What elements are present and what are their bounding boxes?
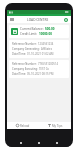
staticText: 7765551200514 xyxy=(38,62,58,66)
staticText: 10000.00 xyxy=(39,32,52,36)
staticText: 05-10-2021 08:15 PM xyxy=(27,72,54,76)
staticText: LOAD CENTRE xyxy=(27,18,49,22)
staticText: Company Executing: xyxy=(12,67,38,71)
button[interactable]: My Tips xyxy=(39,122,71,129)
staticText: Current Balance: xyxy=(20,27,44,31)
staticText: TEST Co xyxy=(39,67,49,71)
button[interactable]: Reference Number: xyxy=(9,60,69,78)
staticText: Company Generating: xyxy=(12,47,40,51)
staticText: 1234561234 xyxy=(38,42,54,46)
button[interactable]: Menu xyxy=(7,16,16,23)
button[interactable]: Reference Number: xyxy=(9,40,69,58)
staticText: Affiliates xyxy=(41,47,52,51)
staticText: 01-10-2021 01:02 AM xyxy=(27,52,54,56)
staticText: Date/Time: xyxy=(12,52,26,56)
staticText: Credit Limit: xyxy=(20,32,38,36)
staticText: 500.00 xyxy=(45,27,55,31)
button[interactable]: Reload xyxy=(7,122,39,129)
staticText: My Tips xyxy=(52,124,63,128)
staticText: Reference Number: xyxy=(12,42,37,46)
button[interactable]: Refresh xyxy=(60,16,71,23)
staticText: Reference Number: xyxy=(12,62,37,66)
button[interactable]: Home xyxy=(35,139,43,147)
staticText: Reload xyxy=(20,124,30,128)
staticText: Date/Time: xyxy=(12,72,26,76)
button[interactable]: Recents xyxy=(53,139,61,147)
button[interactable]: Current Balance: xyxy=(9,25,69,38)
button[interactable]: Back xyxy=(17,139,25,147)
